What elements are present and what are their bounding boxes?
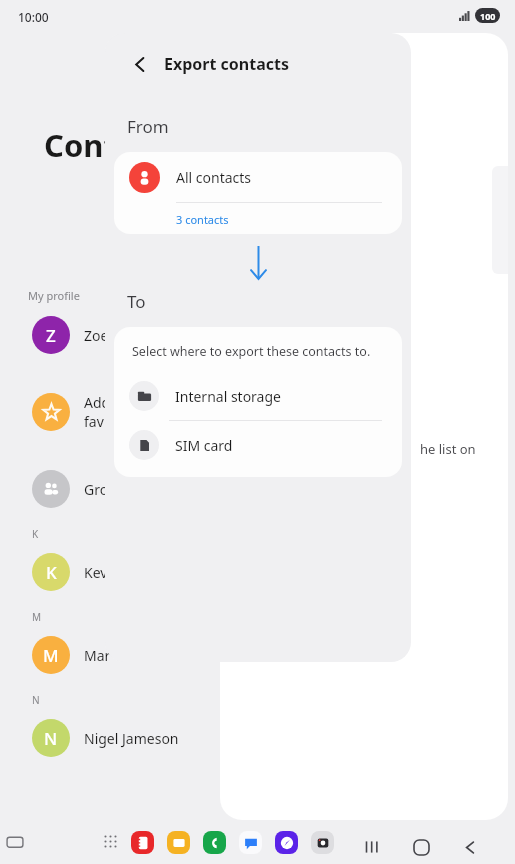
button[interactable]: Minimise	[6, 834, 24, 852]
staticText: SIM card	[175, 436, 233, 455]
button[interactable]: Internal storage	[114, 372, 402, 420]
staticText: All contacts	[176, 168, 252, 187]
button[interactable]: Add	[32, 392, 232, 432]
button[interactable]: Home	[406, 832, 436, 862]
staticText: Zoe	[84, 326, 109, 345]
staticText: Nigel Jameson	[84, 729, 179, 748]
staticText: he list on	[420, 440, 476, 458]
button[interactable]: Camera	[311, 831, 334, 854]
staticText: Kev	[84, 563, 108, 582]
button[interactable]: Back	[455, 832, 485, 862]
button[interactable]: M	[32, 635, 232, 675]
button[interactable]: K	[32, 552, 232, 592]
staticText: Gro	[84, 480, 109, 499]
staticText: My profile	[28, 288, 80, 303]
button[interactable]: Contacts	[131, 831, 154, 854]
staticText: Z	[46, 324, 56, 347]
button[interactable]: Messages	[239, 831, 262, 854]
staticText: 10:00	[18, 9, 49, 25]
staticText: 100	[480, 10, 496, 22]
staticText: To	[127, 290, 146, 313]
button[interactable]: Recents	[357, 832, 387, 862]
button[interactable]: Phone	[203, 831, 226, 854]
button[interactable]: Internet	[275, 831, 298, 854]
staticText: Export contacts	[164, 53, 289, 75]
button[interactable]: Apps	[104, 835, 120, 851]
staticText: Contacts	[44, 124, 181, 166]
button[interactable]: My Files	[167, 831, 190, 854]
staticText: Select where to export these contacts to…	[132, 343, 371, 360]
button[interactable]: Gro	[32, 469, 232, 509]
staticText: Internal storage	[175, 387, 281, 406]
staticText: 3 contacts	[176, 212, 229, 227]
staticText: From	[127, 115, 169, 138]
staticText: Add	[84, 393, 111, 412]
button[interactable]: Back	[125, 49, 155, 79]
staticText: M	[32, 610, 42, 624]
button[interactable]: SIM card	[114, 421, 402, 469]
staticText: N	[32, 693, 40, 707]
button[interactable]: N	[32, 718, 232, 758]
staticText: M	[43, 644, 59, 667]
staticText: Mar	[84, 646, 111, 665]
button[interactable]: Z	[32, 315, 232, 355]
staticText: fav	[84, 412, 104, 431]
staticText: K	[46, 561, 57, 584]
staticText: N	[44, 727, 58, 750]
button[interactable]: All contacts	[114, 152, 402, 234]
staticText: K	[32, 527, 39, 541]
